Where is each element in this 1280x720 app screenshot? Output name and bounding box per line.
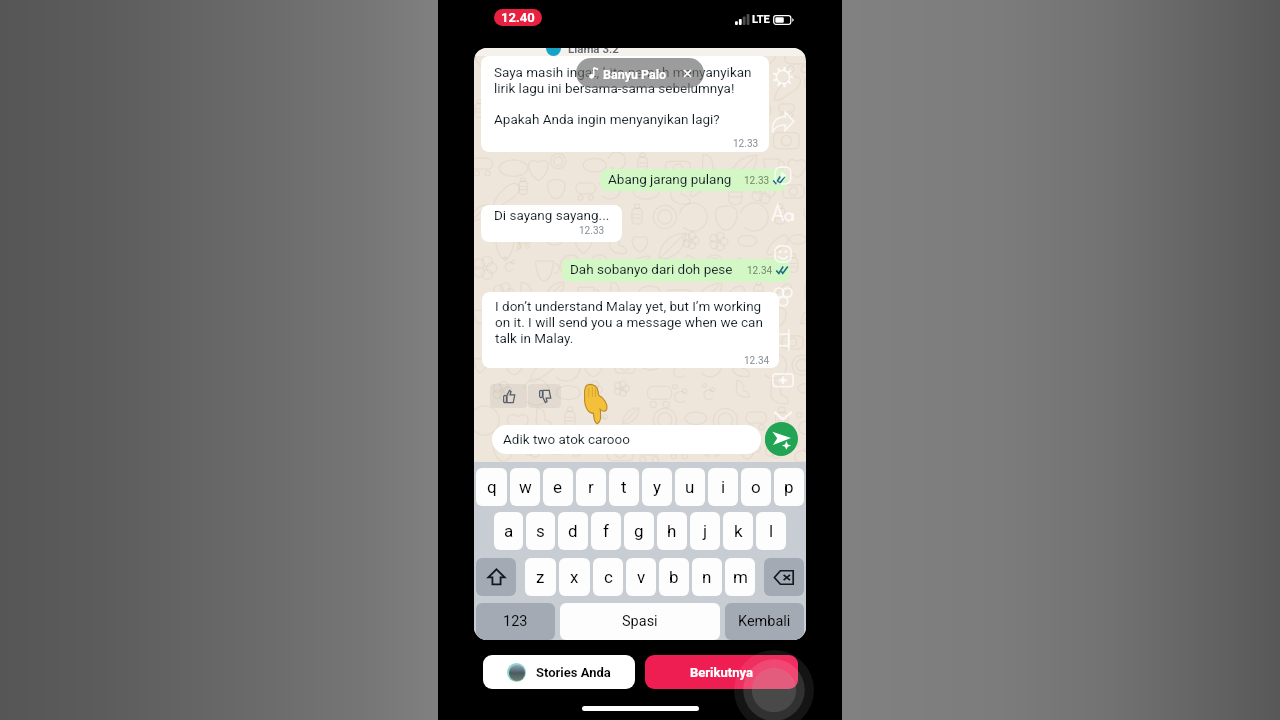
button[interactable]: Add sticker bbox=[770, 163, 796, 189]
staticText: Kembali bbox=[738, 613, 791, 630]
button[interactable]: q bbox=[476, 468, 507, 506]
staticText: b bbox=[669, 567, 679, 587]
staticText: talk in Malay. bbox=[495, 330, 574, 346]
button[interactable]: Send message bbox=[765, 424, 797, 456]
button[interactable]: Adik two atok carooo bbox=[492, 425, 761, 454]
button[interactable]: Abang jarang pulang bbox=[600, 169, 787, 191]
button[interactable]: Add to story bbox=[770, 367, 796, 393]
staticText: s bbox=[536, 521, 545, 541]
button[interactable]: a bbox=[494, 512, 523, 550]
staticText: v bbox=[637, 567, 646, 587]
staticText: Berikutnya bbox=[690, 665, 753, 680]
button[interactable]: f bbox=[591, 512, 621, 550]
button[interactable]: Dislike bbox=[528, 384, 561, 408]
button[interactable]: s bbox=[526, 512, 555, 550]
button[interactable]: i bbox=[708, 468, 738, 506]
button[interactable]: Filters bbox=[770, 284, 796, 310]
button[interactable]: t bbox=[609, 468, 639, 506]
button[interactable]: Effects bbox=[770, 64, 796, 90]
button[interactable]: Add text bbox=[770, 200, 796, 226]
button[interactable]: j bbox=[690, 512, 720, 550]
button[interactable]: w bbox=[510, 468, 540, 506]
button[interactable]: v bbox=[626, 558, 656, 596]
staticText: 12.33 bbox=[579, 225, 605, 237]
button[interactable]: Di sayang sayang... bbox=[481, 205, 622, 242]
button[interactable]: y bbox=[642, 468, 672, 506]
staticText: LTE bbox=[752, 13, 770, 26]
button[interactable]: g bbox=[624, 512, 654, 550]
staticText: Saya masih ingat, kita pernah menyanyika… bbox=[494, 64, 752, 80]
staticText: on it. I will send you a message when we… bbox=[495, 314, 763, 330]
button[interactable]: Send story bbox=[765, 422, 798, 455]
staticText: g bbox=[634, 521, 644, 541]
button[interactable]: z bbox=[525, 558, 556, 596]
button[interactable]: Like bbox=[490, 384, 527, 408]
staticText: n bbox=[702, 567, 712, 587]
staticText: o bbox=[751, 477, 761, 497]
staticText: m bbox=[733, 567, 748, 587]
staticText: a bbox=[504, 521, 514, 541]
staticText: z bbox=[536, 567, 545, 587]
staticText: f bbox=[603, 521, 609, 541]
staticText: Banyu Palo bbox=[603, 67, 667, 82]
button[interactable]: p bbox=[774, 468, 804, 506]
staticText: Stories Anda bbox=[536, 665, 611, 680]
button[interactable]: 123 bbox=[476, 603, 555, 640]
staticText: Adik two atok carooo bbox=[503, 431, 630, 447]
staticText: q bbox=[487, 477, 497, 497]
button[interactable]: I don’t understand Malay yet, but I’m wo… bbox=[482, 292, 779, 368]
staticText: w bbox=[519, 477, 532, 497]
button[interactable]: Spasi bbox=[560, 603, 720, 640]
button[interactable]: Berikutnya bbox=[645, 655, 798, 689]
staticText: c bbox=[604, 567, 613, 587]
staticText: i bbox=[721, 477, 726, 497]
staticText: e bbox=[553, 477, 563, 497]
button[interactable]: u bbox=[675, 468, 705, 506]
button[interactable]: e bbox=[543, 468, 573, 506]
staticText: u bbox=[685, 477, 695, 497]
staticText: 12.33 bbox=[733, 138, 759, 150]
button[interactable]: n bbox=[692, 558, 722, 596]
button[interactable]: Add emoji bbox=[770, 241, 796, 267]
staticText: lirik lagu ini bersama-sama sebelumnya! bbox=[494, 80, 735, 96]
button[interactable]: Banyu Palo bbox=[576, 58, 704, 88]
staticText: Di sayang sayang... bbox=[494, 207, 610, 223]
button[interactable]: b bbox=[659, 558, 689, 596]
staticText: Apakah Anda ingin menyanyikan lagi? bbox=[494, 111, 720, 127]
staticText: 12.34 bbox=[747, 265, 773, 277]
staticText: 123 bbox=[503, 613, 528, 630]
staticText: r bbox=[588, 477, 594, 497]
button[interactable]: m bbox=[725, 558, 755, 596]
button[interactable]: r bbox=[576, 468, 606, 506]
staticText: 12.34 bbox=[744, 355, 770, 367]
button[interactable]: c bbox=[593, 558, 623, 596]
button[interactable]: Saya masih ingat, kita pernah menyanyika… bbox=[481, 56, 769, 152]
button[interactable]: Backspace bbox=[764, 558, 804, 596]
staticText: Llama 3.2 bbox=[568, 48, 619, 55]
button[interactable]: o bbox=[741, 468, 771, 506]
staticText: k bbox=[734, 521, 743, 541]
staticText: j bbox=[703, 521, 708, 541]
staticText: x bbox=[570, 567, 579, 587]
staticText: I don’t understand Malay yet, but I’m wo… bbox=[495, 298, 762, 314]
button[interactable]: k bbox=[723, 512, 753, 550]
staticText: y bbox=[653, 477, 662, 497]
button[interactable]: Dah sobanyo dari doh pese bbox=[562, 259, 790, 282]
staticText: Spasi bbox=[622, 613, 658, 630]
button[interactable]: Crop bbox=[770, 327, 796, 353]
staticText: 12.40 bbox=[501, 10, 535, 25]
button[interactable]: Share bbox=[770, 109, 796, 135]
staticText: Dah sobanyo dari doh pese bbox=[570, 261, 733, 277]
staticText: p bbox=[784, 477, 794, 497]
staticText: t bbox=[621, 477, 627, 497]
button[interactable]: h bbox=[657, 512, 687, 550]
staticText: d bbox=[568, 521, 578, 541]
button[interactable]: Shift bbox=[476, 558, 516, 596]
button[interactable]: d bbox=[558, 512, 588, 550]
button[interactable]: Kembali bbox=[725, 603, 804, 640]
button[interactable]: l bbox=[756, 512, 786, 550]
staticText: Abang jarang pulang bbox=[608, 171, 732, 187]
button[interactable]: x bbox=[559, 558, 590, 596]
button[interactable]: Stories Anda bbox=[483, 655, 635, 689]
button[interactable]: Save bbox=[770, 402, 796, 428]
